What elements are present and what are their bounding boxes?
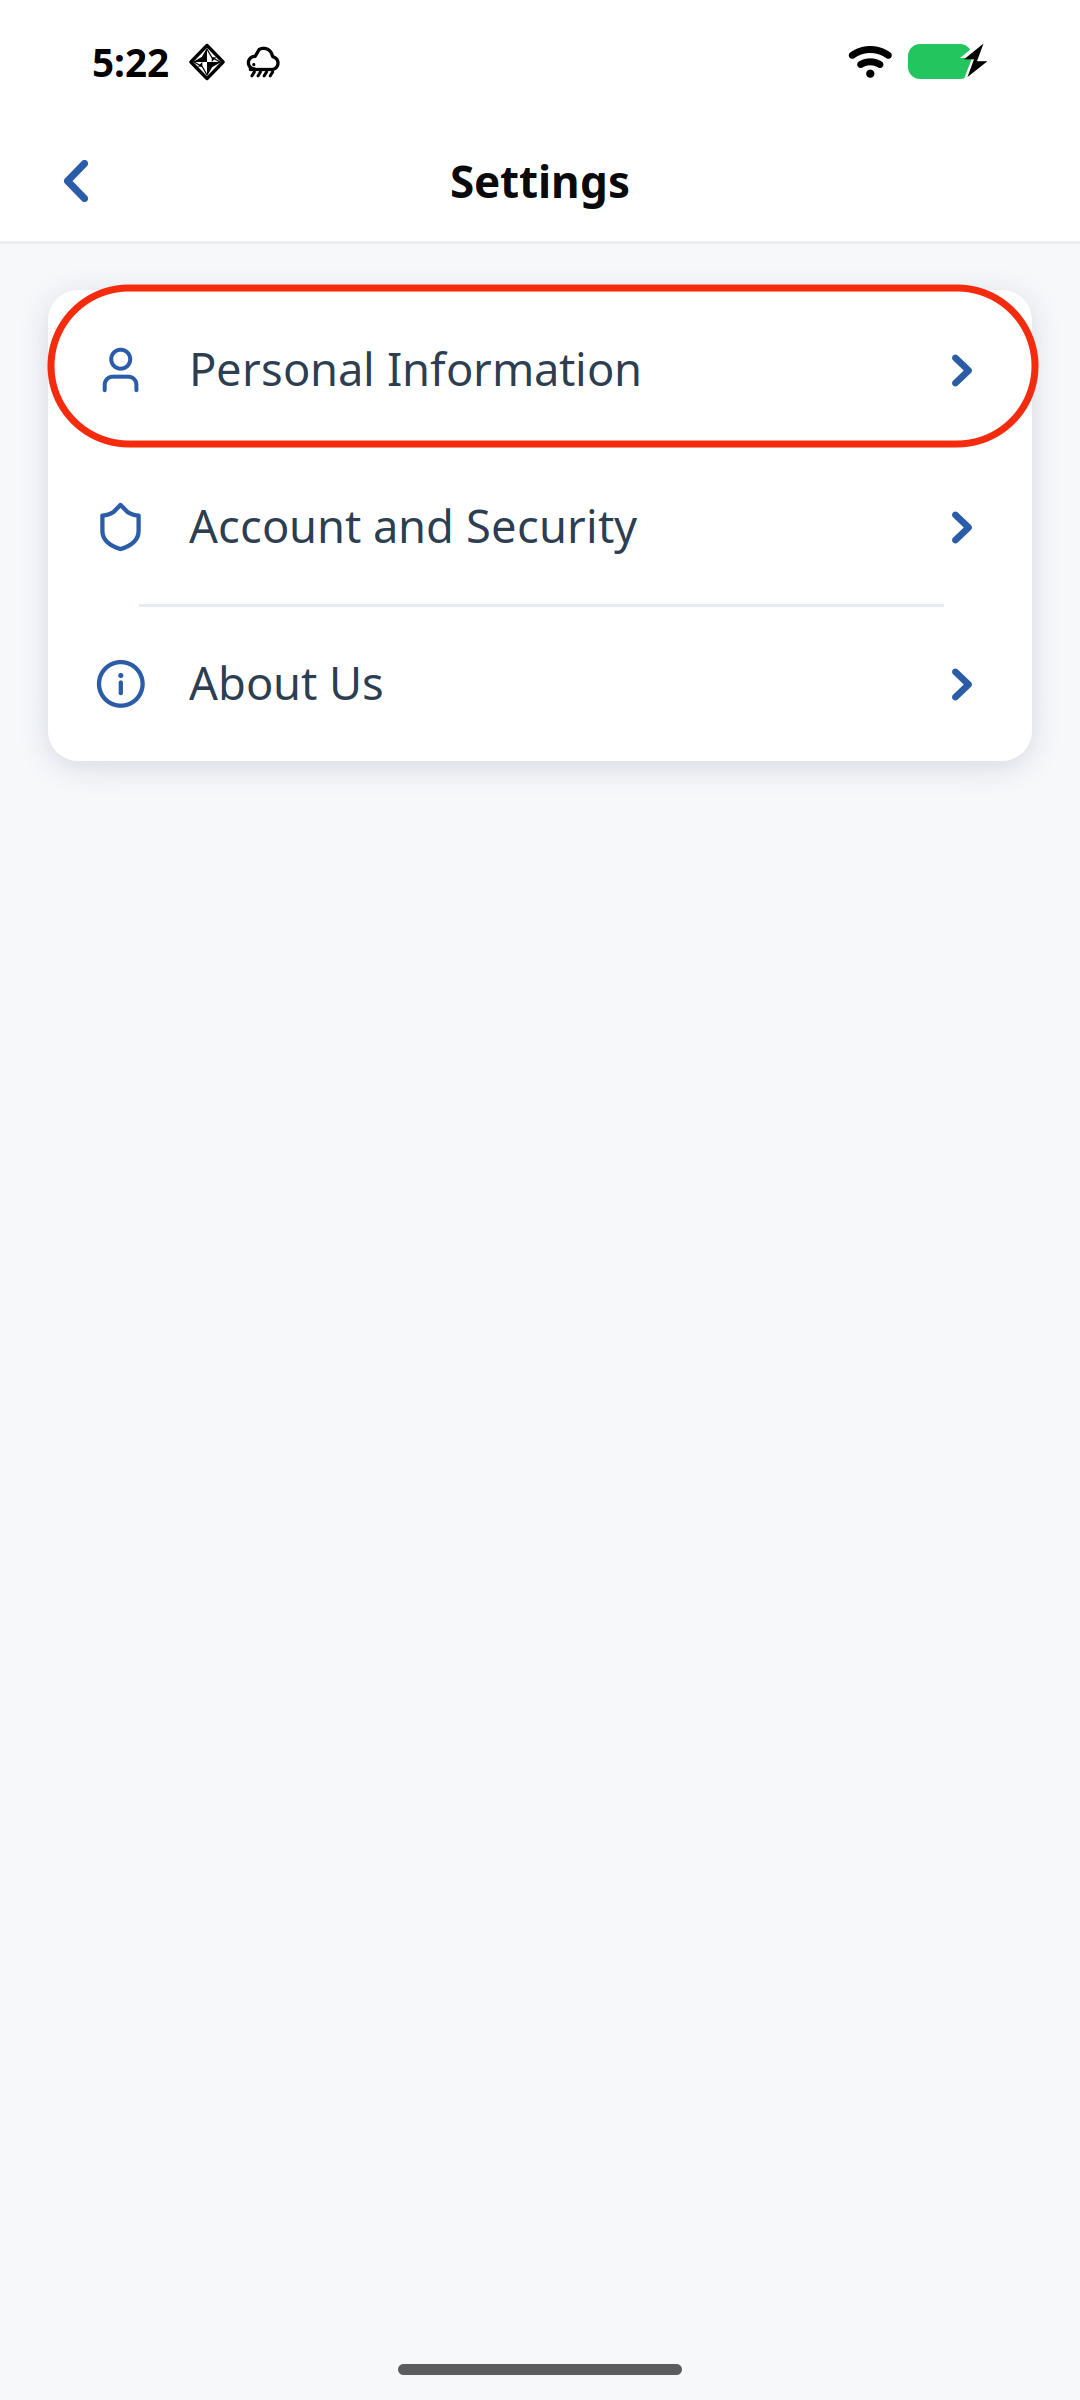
staticText: About Us bbox=[189, 652, 384, 713]
staticText: Settings bbox=[450, 152, 630, 210]
staticText: Account and Security bbox=[189, 495, 637, 556]
staticText: 5:22 bbox=[92, 36, 169, 88]
button[interactable]: Personal Information bbox=[48, 290, 1032, 447]
button[interactable]: Account and Security bbox=[48, 447, 1032, 604]
button[interactable]: About Us bbox=[48, 604, 1032, 761]
staticText: Personal Information bbox=[189, 338, 642, 399]
button[interactable]: Back bbox=[31, 136, 121, 226]
